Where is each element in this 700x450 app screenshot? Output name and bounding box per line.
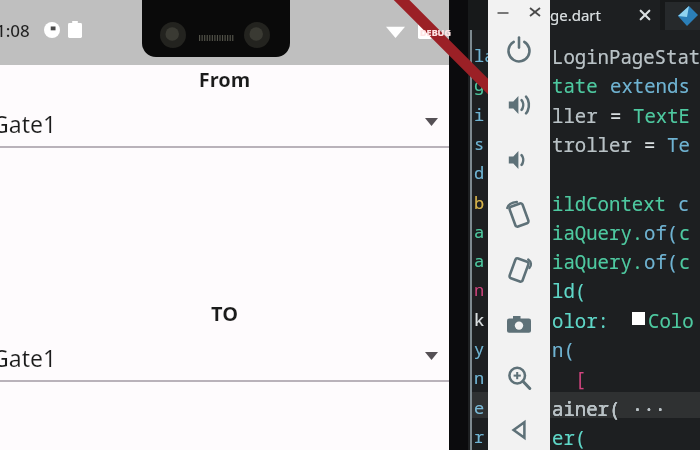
staticText: troller bbox=[552, 132, 644, 158]
button[interactable]: Volume up bbox=[504, 90, 534, 120]
staticText: n( bbox=[552, 337, 575, 363]
staticText: g bbox=[474, 73, 485, 96]
staticText: c bbox=[679, 220, 691, 246]
button[interactable]: Gate1 bbox=[0, 100, 449, 146]
staticText: k bbox=[474, 308, 485, 331]
staticText: [ bbox=[552, 366, 587, 392]
button[interactable] bbox=[665, 2, 700, 30]
staticText: ainer( ··· bbox=[552, 396, 667, 422]
staticText: ller bbox=[552, 103, 610, 129]
staticText: b bbox=[474, 191, 485, 214]
staticText: extends bbox=[610, 73, 690, 99]
button[interactable]: Back bbox=[504, 415, 534, 445]
staticText: e bbox=[474, 396, 485, 419]
staticText: a bbox=[474, 249, 485, 272]
staticText: olor: bbox=[552, 308, 621, 334]
staticText: = bbox=[644, 132, 667, 158]
staticText: ge.dart bbox=[550, 5, 601, 25]
staticText: iaQuery. bbox=[552, 249, 644, 275]
staticText: er( bbox=[552, 425, 587, 450]
staticText: Colo bbox=[648, 308, 694, 334]
button[interactable]: Zoom bbox=[504, 363, 534, 393]
button[interactable]: Take screenshot bbox=[504, 310, 534, 340]
staticText: Gate1 bbox=[0, 108, 57, 139]
staticText: 1:08 bbox=[0, 19, 30, 42]
staticText: s bbox=[474, 132, 485, 155]
button[interactable]: Close tab bbox=[636, 6, 654, 24]
staticText: a bbox=[474, 220, 485, 243]
staticText: LoginPageState bbox=[552, 44, 700, 70]
button[interactable]: Volume down bbox=[504, 145, 534, 175]
button[interactable]: ge.dart bbox=[540, 0, 660, 30]
button[interactable]: Minimize bbox=[492, 2, 514, 22]
button[interactable]: Gate1 bbox=[0, 334, 449, 380]
staticText: of( bbox=[644, 220, 679, 246]
button[interactable]: Rotate left bbox=[504, 200, 534, 230]
staticText: Gate1 bbox=[0, 342, 57, 373]
staticText: of( bbox=[644, 249, 679, 275]
staticText: DEBUG bbox=[420, 26, 451, 38]
staticText: Te bbox=[667, 132, 690, 158]
staticText: = bbox=[610, 103, 633, 129]
staticText: From bbox=[0, 66, 449, 93]
staticText: y bbox=[474, 337, 485, 360]
staticText: c bbox=[678, 191, 690, 217]
staticText: n bbox=[474, 366, 485, 389]
staticText: ainer( ··· bbox=[552, 396, 667, 422]
staticText: TextE bbox=[633, 103, 691, 129]
button[interactable]: Close bbox=[524, 2, 546, 22]
staticText: d bbox=[474, 161, 485, 184]
button[interactable]: Rotate right bbox=[504, 255, 534, 285]
staticText: la bbox=[474, 44, 495, 67]
staticText: r bbox=[474, 425, 485, 448]
staticText: c bbox=[679, 249, 691, 275]
staticText: ildContext bbox=[552, 191, 678, 217]
staticText: i bbox=[474, 103, 485, 126]
staticText: n bbox=[474, 278, 485, 301]
staticText: TO bbox=[0, 300, 449, 327]
staticText: tate bbox=[552, 73, 610, 99]
staticText: ld( bbox=[552, 278, 587, 304]
button[interactable]: Power bbox=[504, 35, 534, 65]
staticText: iaQuery. bbox=[552, 220, 644, 246]
